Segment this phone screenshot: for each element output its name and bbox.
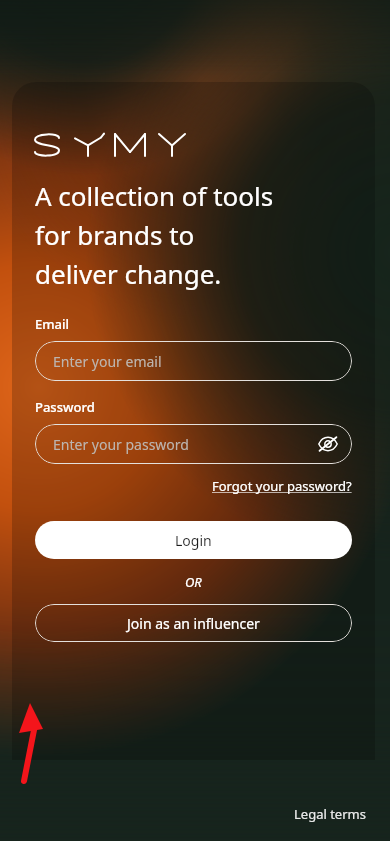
staticText: Join as an influencer	[127, 614, 260, 633]
staticText: Enter your email	[53, 352, 340, 371]
button[interactable]: Legal terms	[294, 805, 366, 823]
button[interactable]: Join as an influencer	[35, 604, 352, 642]
staticText: Email	[35, 315, 70, 333]
staticText: A collection of tools for brands to deli…	[35, 178, 274, 291]
button[interactable]: Enter your password	[35, 424, 352, 464]
staticText: Legal terms	[294, 805, 366, 823]
staticText: Forgot your password?	[212, 477, 352, 495]
staticText: Login	[175, 531, 212, 550]
staticText: OR	[185, 573, 202, 591]
staticText: Enter your password	[53, 435, 316, 454]
button[interactable]: Show password	[316, 432, 340, 456]
button[interactable]: Login	[35, 521, 352, 559]
button[interactable]: Enter your email	[35, 341, 352, 381]
staticText: Password	[35, 398, 95, 416]
button[interactable]: Forgot your password?	[212, 477, 352, 495]
